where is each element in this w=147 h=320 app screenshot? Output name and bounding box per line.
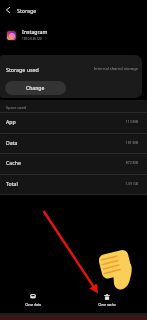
staticText: Clear data [25,303,41,307]
button[interactable]: Clear data [7,291,59,312]
staticText: Clear cache [98,303,116,307]
staticText: Internal shared storage [70,66,138,71]
button[interactable]: Instagram [0,27,147,43]
staticText: Storage [17,7,37,14]
button[interactable]: Change [5,81,66,95]
button[interactable]: Data [0,133,147,154]
staticText: Total [6,180,18,187]
staticText: 872 MB [80,160,138,165]
staticText: Space used [6,105,27,110]
button[interactable]: Cache [0,153,147,174]
button[interactable]: Total [0,174,147,195]
staticText: App [6,118,16,125]
staticText: Cache [6,159,21,166]
button[interactable]: Clear cache [81,291,133,312]
staticText: 1.09 GB [80,181,138,186]
staticText: 181 MB [80,140,138,145]
staticText: 113 MB [80,119,138,124]
staticText: 190.0.0.45.120 [22,37,42,41]
button[interactable]: Back [0,2,15,18]
button[interactable]: App [0,112,147,133]
staticText: Storage used [6,66,39,73]
staticText: Change [26,85,45,92]
staticText: Data [6,139,18,146]
staticText: Instagram [22,29,48,36]
